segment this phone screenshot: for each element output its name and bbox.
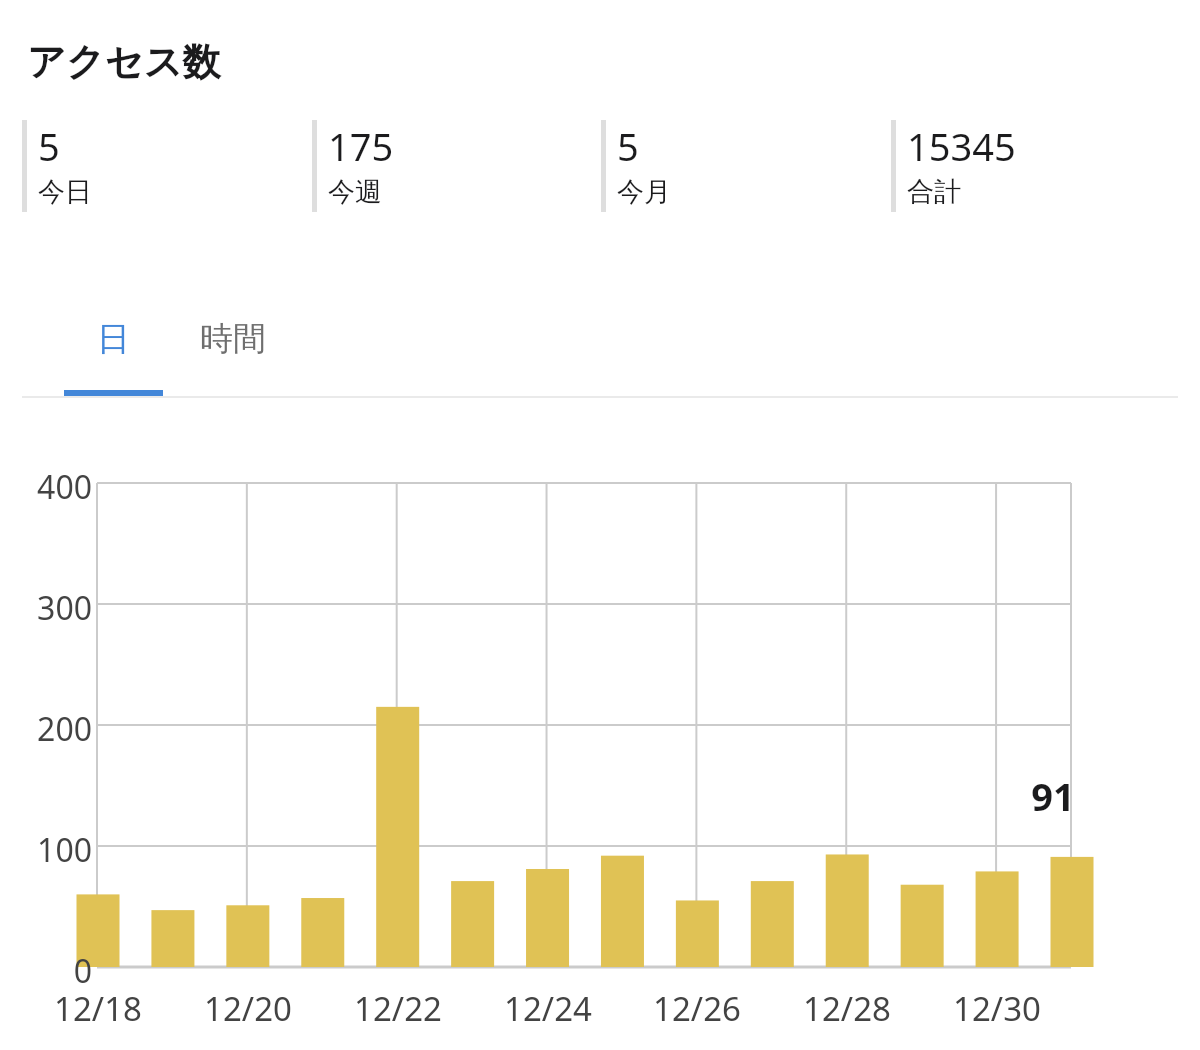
- staticText: 12/20: [204, 986, 292, 1031]
- staticText: 5: [38, 120, 60, 172]
- staticText: 200: [37, 707, 92, 751]
- staticText: 今月: [617, 175, 671, 209]
- staticText: 15345: [907, 120, 1016, 172]
- staticText: 12/18: [54, 986, 142, 1031]
- staticText: 300: [37, 586, 92, 630]
- staticText: 5: [617, 120, 639, 172]
- staticText: 12/22: [354, 986, 442, 1031]
- button[interactable]: 15345: [891, 120, 1176, 212]
- button[interactable]: 5: [601, 120, 886, 212]
- staticText: 175: [328, 120, 394, 172]
- staticText: 91: [1031, 770, 1075, 822]
- staticText: 12/26: [653, 986, 741, 1031]
- staticText: 今日: [38, 175, 92, 209]
- staticText: 100: [37, 828, 92, 872]
- staticText: 12/30: [953, 986, 1041, 1031]
- button[interactable]: 175: [312, 120, 597, 212]
- button[interactable]: 5: [22, 120, 307, 212]
- staticText: 0: [73, 949, 92, 993]
- button[interactable]: 日: [64, 296, 163, 396]
- staticText: 今週: [328, 175, 382, 209]
- button[interactable]: 時間: [163, 296, 303, 396]
- staticText: 日: [97, 318, 130, 360]
- staticText: アクセス数: [27, 38, 221, 86]
- staticText: 400: [37, 465, 92, 509]
- staticText: 時間: [200, 318, 266, 360]
- staticText: 12/24: [504, 986, 592, 1031]
- staticText: 合計: [907, 175, 961, 209]
- staticText: 12/28: [803, 986, 891, 1031]
